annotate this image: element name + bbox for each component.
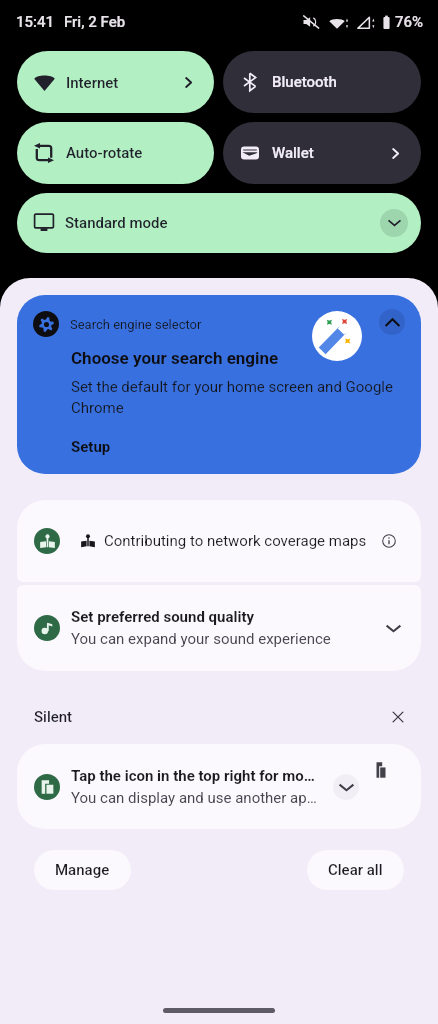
button[interactable]: Expand notification [378,613,408,643]
staticText: Fri, 2 Feb [64,13,126,31]
button[interactable]: Set preferred sound quality [17,585,421,671]
button[interactable]: Expand notification [333,774,359,800]
button[interactable]: Internet [17,51,214,113]
button[interactable]: Clear all [307,850,404,890]
staticText: Silent [34,708,73,726]
staticText: Set the default for your home screen and… [71,378,396,416]
button[interactable]: Contributing to network coverage maps [17,500,421,582]
staticText: Clear all [328,861,383,879]
staticText: Bluetooth [272,73,337,91]
staticText: You can expand your sound experience [71,630,331,648]
staticText: Search engine selector [70,317,202,332]
staticText: Manage [55,861,110,879]
button[interactable]: Tap the icon in the top right for mo… [17,744,421,829]
staticText: Wallet [272,144,314,162]
button[interactable]: Bluetooth [223,51,421,113]
staticText: Set preferred sound quality [71,608,255,626]
button[interactable]: Clear silent notifications [391,710,405,724]
staticText: Contributing to network coverage maps [104,532,367,550]
staticText: 76% [395,13,424,31]
button[interactable]: Setup [71,438,111,456]
staticText: Internet [66,74,119,92]
button[interactable]: Manage [34,850,131,890]
staticText: Auto-rotate [66,144,143,162]
button[interactable]: Search engine selector [17,295,421,474]
staticText: Setup [71,438,111,456]
button[interactable]: Expand display mode [380,209,408,237]
button[interactable]: Wallet [223,122,421,184]
button[interactable]: More information [382,534,396,548]
button[interactable]: Auto-rotate [17,122,214,184]
staticText: Tap the icon in the top right for mo… [71,767,315,785]
staticText: Standard mode [65,214,168,232]
button[interactable]: Standard mode [17,193,421,253]
button[interactable]: Collapse notification [379,309,405,335]
staticText: You can display and use another ap… [71,789,317,807]
staticText: Choose your search engine [71,348,279,368]
staticText: 15:41 [16,13,55,31]
